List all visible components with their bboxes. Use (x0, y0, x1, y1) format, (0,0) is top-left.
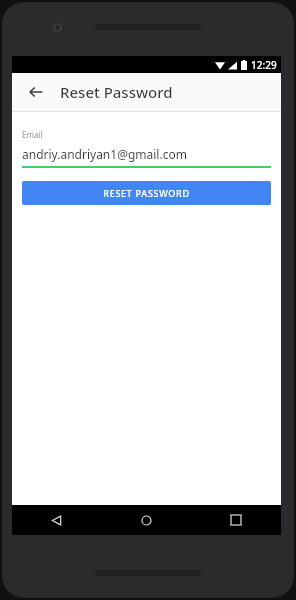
staticText: andriy.andriyan1@gmail.com (22, 146, 187, 162)
button[interactable]: Recent apps (191, 505, 281, 535)
button[interactable]: Back (22, 78, 50, 106)
button[interactable]: RESET PASSWORD (22, 181, 271, 205)
staticText: Reset Password (60, 82, 173, 102)
button[interactable]: andriy.andriyan1@gmail.com (22, 146, 271, 162)
button[interactable]: Home (101, 505, 191, 535)
button[interactable]: Back (12, 505, 101, 535)
staticText: 12:29 (251, 58, 277, 72)
staticText: Email (22, 129, 43, 140)
staticText: RESET PASSWORD (103, 187, 190, 199)
